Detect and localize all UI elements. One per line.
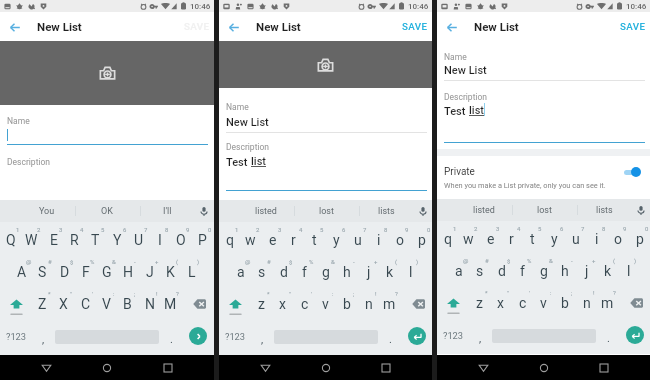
button[interactable]: 8 — [368, 225, 389, 256]
button[interactable]: SAVE — [611, 15, 650, 38]
button[interactable]: : — [96, 289, 117, 320]
button[interactable]: 6 — [544, 224, 565, 255]
button[interactable]: - — [554, 256, 575, 287]
button[interactable]: Enter — [408, 327, 426, 345]
button[interactable]: # — [469, 256, 490, 287]
button[interactable]: ) — [400, 257, 421, 288]
button[interactable]: " — [272, 289, 293, 320]
button[interactable]: Shift — [437, 286, 469, 317]
button[interactable]: Voice input — [413, 200, 432, 222]
button[interactable]: Home — [311, 355, 341, 380]
button[interactable]: 4 — [64, 225, 85, 256]
button[interactable]: lost — [296, 200, 356, 222]
button[interactable]: ! — [358, 289, 379, 320]
button[interactable]: 6 — [107, 225, 128, 256]
button[interactable]: 1 — [219, 225, 240, 256]
button[interactable]: ?123 — [0, 321, 32, 352]
button[interactable]: - — [336, 257, 357, 288]
button[interactable]: + — [358, 257, 379, 288]
button[interactable]: Shift — [219, 287, 251, 318]
button[interactable]: ' — [75, 289, 96, 320]
button[interactable]: 8 — [149, 225, 170, 256]
button[interactable]: lists — [574, 199, 634, 221]
button[interactable]: & — [533, 256, 554, 287]
button[interactable]: I'll — [137, 200, 197, 222]
button[interactable]: % — [294, 257, 315, 288]
button[interactable]: @ — [11, 257, 32, 288]
button[interactable]: 2 — [21, 225, 42, 256]
button[interactable]: 8 — [586, 224, 607, 255]
button[interactable]: ) — [618, 256, 639, 287]
button[interactable]: 2 — [458, 224, 479, 255]
button[interactable]: Backspace — [181, 287, 213, 318]
button[interactable]: ) — [181, 257, 202, 288]
button[interactable]: Private — [437, 158, 650, 199]
button[interactable]: ?123 — [219, 321, 251, 352]
button[interactable]: lost — [514, 199, 574, 221]
button[interactable]: Backspace — [400, 287, 432, 318]
button[interactable]: 1 — [437, 224, 458, 255]
button[interactable]: Back — [3, 15, 27, 39]
button[interactable]: Recents — [371, 355, 401, 380]
button[interactable]: , — [470, 320, 490, 351]
button[interactable]: 4 — [283, 225, 304, 256]
button[interactable]: ( — [379, 257, 400, 288]
button[interactable]: 3 — [43, 225, 64, 256]
button[interactable]: : — [315, 289, 336, 320]
button[interactable]: 4 — [501, 224, 522, 255]
button[interactable]: ' — [512, 288, 533, 319]
button[interactable]: * — [469, 288, 490, 319]
button[interactable]: . — [161, 321, 181, 352]
button[interactable]: 7 — [347, 225, 368, 256]
button[interactable]: , — [252, 321, 272, 352]
button[interactable]: 1 — [0, 225, 21, 256]
button[interactable]: ( — [160, 257, 181, 288]
button[interactable]: , — [33, 321, 53, 352]
button[interactable]: Recents — [153, 355, 183, 380]
button[interactable]: 3 — [262, 225, 283, 256]
button[interactable]: 6 — [326, 225, 347, 256]
button[interactable]: Voice input — [631, 199, 650, 221]
button[interactable]: SAVE — [393, 15, 432, 38]
button[interactable]: 0 — [411, 225, 432, 256]
button[interactable]: & — [315, 257, 336, 288]
button[interactable]: & — [96, 257, 117, 288]
button[interactable]: ! — [139, 289, 160, 320]
button[interactable]: 5 — [522, 224, 543, 255]
button[interactable]: ; — [554, 288, 575, 319]
button[interactable]: SAVE — [175, 15, 214, 38]
button[interactable]: Voice input — [194, 200, 213, 222]
button[interactable]: . — [598, 320, 618, 351]
button[interactable]: 9 — [607, 224, 628, 255]
button[interactable]: 7 — [565, 224, 586, 255]
button[interactable]: 5 — [85, 225, 106, 256]
button[interactable]: " — [490, 288, 511, 319]
button[interactable]: * — [251, 289, 272, 320]
button[interactable]: % — [512, 256, 533, 287]
button[interactable]: - — [117, 257, 138, 288]
button[interactable]: Home — [529, 355, 559, 380]
button[interactable]: + — [576, 256, 597, 287]
button[interactable]: + — [139, 257, 160, 288]
button[interactable]: You — [17, 200, 77, 222]
button[interactable]: Back — [31, 355, 61, 380]
button[interactable]: ? — [597, 288, 618, 319]
button[interactable]: OK — [77, 200, 137, 222]
button[interactable]: ; — [117, 289, 138, 320]
button[interactable]: listed — [454, 199, 514, 221]
button[interactable]: ' — [294, 289, 315, 320]
button[interactable]: ( — [597, 256, 618, 287]
button[interactable]: Back — [468, 355, 498, 380]
button[interactable]: Enter — [189, 327, 207, 345]
button[interactable]: % — [75, 257, 96, 288]
button[interactable]: Recents — [589, 355, 619, 380]
button[interactable]: 7 — [128, 225, 149, 256]
button[interactable]: * — [32, 289, 53, 320]
button[interactable]: # — [32, 257, 53, 288]
button[interactable]: Back — [250, 355, 280, 380]
button[interactable]: 5 — [304, 225, 325, 256]
button[interactable]: $ — [54, 257, 75, 288]
